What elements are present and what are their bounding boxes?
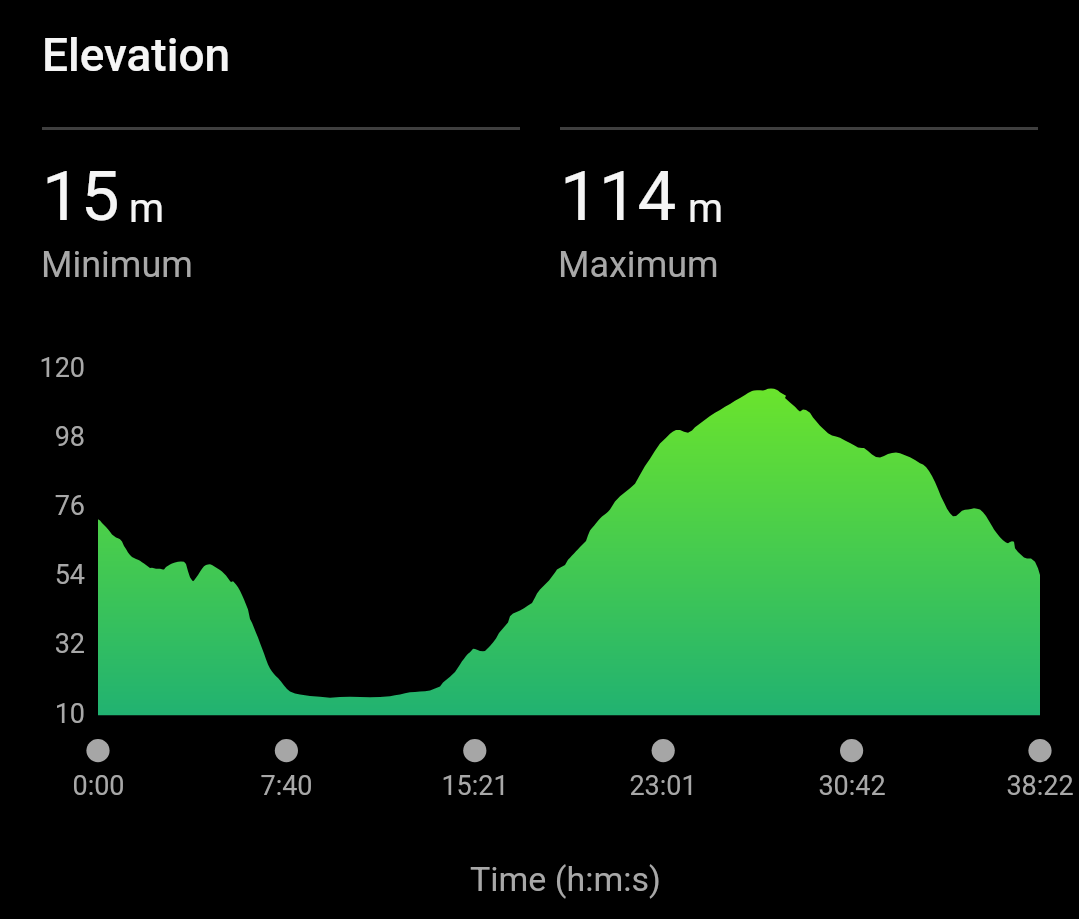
staticText: 114: [560, 156, 677, 237]
staticText: 15: [42, 156, 120, 237]
staticText: 98: [54, 421, 85, 453]
button[interactable]: 15: [42, 150, 520, 285]
staticText: Elevation: [42, 28, 231, 82]
staticText: 10: [54, 698, 85, 730]
staticText: 76: [54, 490, 85, 522]
staticText: 30:42: [818, 770, 886, 802]
staticText: Time (h:m:s): [470, 859, 661, 899]
staticText: m: [688, 185, 724, 232]
staticText: m: [129, 185, 165, 232]
staticText: Maximum: [558, 244, 719, 286]
button[interactable]: 114: [560, 150, 1038, 285]
staticText: 38:22: [1006, 770, 1074, 802]
button[interactable]: Elevation profile graph: [90, 347, 1048, 735]
staticText: 32: [54, 628, 85, 660]
staticText: 15:21: [441, 770, 509, 802]
staticText: 23:01: [629, 770, 697, 802]
staticText: Minimum: [41, 244, 193, 286]
staticText: 54: [54, 559, 85, 591]
staticText: 120: [39, 352, 85, 384]
staticText: 0:00: [72, 770, 125, 802]
staticText: 7:40: [260, 770, 313, 802]
